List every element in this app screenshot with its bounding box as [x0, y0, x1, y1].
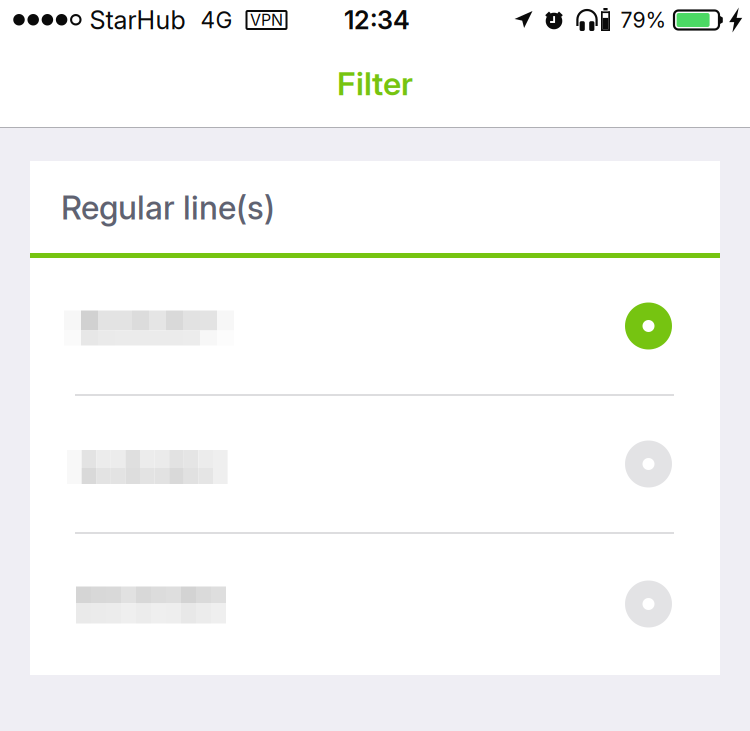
staticText: StarHub — [89, 5, 185, 35]
staticText: 12:34 — [344, 5, 410, 35]
button[interactable]: Filter — [317, 52, 433, 115]
staticText: Regular line(s) — [61, 188, 275, 227]
staticText: 4G — [200, 6, 232, 34]
button[interactable]: Line 2 — [30, 396, 720, 532]
staticText: 79% — [620, 7, 666, 33]
staticText: Filter — [337, 64, 413, 103]
button[interactable]: Line 1, selected — [30, 258, 720, 394]
staticText: VPN — [250, 10, 283, 30]
button[interactable]: Line 3 — [30, 534, 720, 674]
